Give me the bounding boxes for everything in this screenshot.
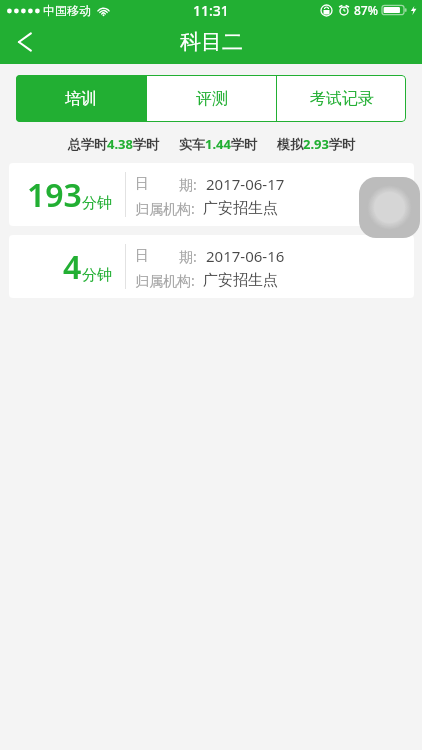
button[interactable]: Back [0, 20, 44, 64]
button[interactable]: 培训 [16, 75, 146, 122]
staticText: 广安招生点 [203, 199, 278, 218]
staticText: 4 [63, 245, 82, 289]
staticText: 中国移动 [43, 3, 91, 18]
staticText: 学时 [231, 136, 257, 152]
staticText: 日 [135, 247, 149, 265]
staticText: 4.38 [107, 135, 133, 153]
staticText: 培训 [65, 89, 97, 109]
button[interactable]: 考试记录 [277, 75, 406, 122]
staticText: 分钟 [82, 266, 112, 285]
staticText: 1.44 [205, 135, 231, 153]
staticText: 期: [179, 247, 197, 266]
staticText: 考试记录 [310, 89, 374, 109]
button[interactable]: 193 [9, 163, 414, 226]
button[interactable]: 评测 [147, 75, 276, 122]
staticText: 归属机构: [135, 199, 195, 218]
staticText: 模拟 [277, 136, 303, 152]
staticText: 广安招生点 [203, 271, 278, 290]
staticText: 2017-06-16 [206, 246, 285, 266]
staticText: 科目二 [180, 29, 243, 55]
staticText: 学时 [329, 136, 355, 152]
staticText: 归属机构: [135, 271, 195, 290]
staticText: 实车 [179, 136, 205, 152]
staticText: 学时 [133, 136, 159, 152]
staticText: 日 [135, 175, 149, 193]
staticText: 期: [179, 175, 197, 194]
button[interactable]: AssistiveTouch [359, 177, 420, 238]
staticText: 分钟 [82, 194, 112, 213]
staticText: 2017-06-17 [206, 174, 285, 194]
staticText: 11:31 [193, 1, 229, 20]
staticText: 87% [354, 2, 378, 18]
staticText: 评测 [196, 89, 228, 109]
staticText: 193 [27, 173, 82, 217]
staticText: 2.93 [303, 135, 329, 153]
button[interactable]: 4 [9, 235, 414, 298]
staticText: 总学时 [68, 136, 107, 152]
